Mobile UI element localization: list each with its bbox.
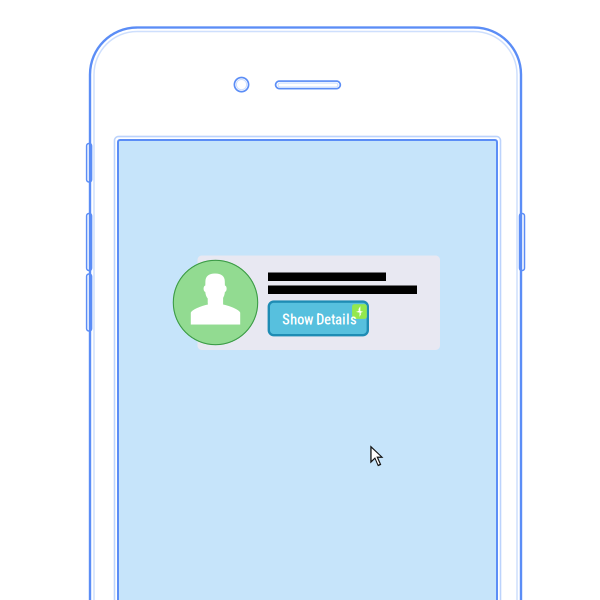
button[interactable]: Show Details: [269, 302, 368, 335]
staticText: Show Details: [282, 311, 357, 328]
